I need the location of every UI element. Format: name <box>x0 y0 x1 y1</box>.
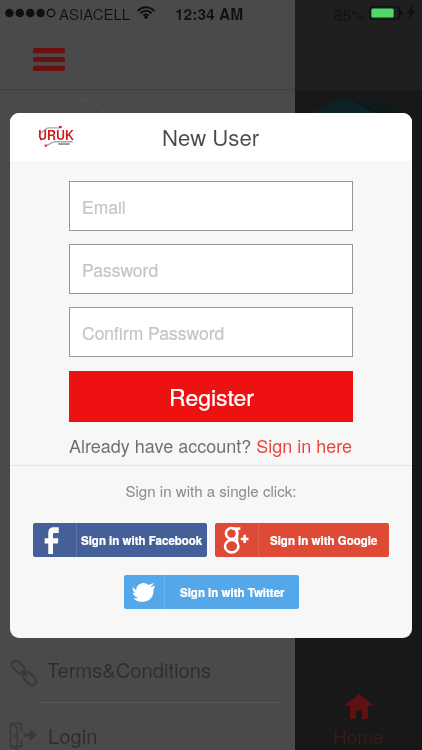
button[interactable]: Sign in with Google <box>215 523 389 557</box>
staticText: New User <box>162 121 260 153</box>
staticText: Confirm Password <box>82 320 225 345</box>
button[interactable]: Menu <box>21 38 77 82</box>
staticText: Sign in with Twitter <box>180 584 285 600</box>
button[interactable]: Terms&Conditions <box>0 648 295 698</box>
button[interactable]: Email <box>69 181 353 231</box>
button[interactable]: Home <box>295 694 422 750</box>
button[interactable]: Login <box>0 710 295 750</box>
staticText: Login <box>48 721 98 750</box>
staticText: Sign in with Facebook <box>81 532 203 548</box>
staticText: Sign in with a single click: <box>10 480 412 502</box>
staticText: Password <box>82 257 159 282</box>
staticText: Terms&Conditions <box>47 655 212 684</box>
button[interactable]: Already have account? Sign in here <box>69 432 353 458</box>
staticText: Register <box>169 380 254 413</box>
button[interactable]: Register <box>69 371 353 422</box>
staticText: Email <box>82 194 126 219</box>
button[interactable]: Sign in with Facebook <box>33 523 207 557</box>
staticText: URUK <box>38 126 75 144</box>
button[interactable]: Sign in with Twitter <box>124 575 299 609</box>
staticText: Home <box>333 722 384 749</box>
button[interactable]: Password <box>69 244 353 294</box>
staticText: 12:34 AM <box>175 3 244 25</box>
staticText: 85% <box>334 3 366 25</box>
staticText: ASIACELL <box>59 3 131 24</box>
staticText: Sign in with Google <box>270 532 378 548</box>
button[interactable]: Confirm Password <box>69 307 353 357</box>
